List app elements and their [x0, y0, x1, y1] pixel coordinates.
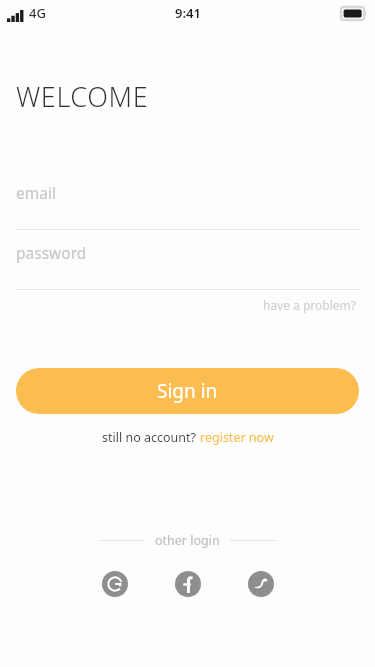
button[interactable]: Sign in with Facebook — [175, 571, 201, 597]
button[interactable]: Sign in with Google — [102, 571, 128, 597]
staticText: 4G — [29, 4, 46, 22]
staticText: have a problem? — [263, 297, 357, 313]
staticText: register now — [200, 429, 274, 446]
button[interactable]: email — [16, 182, 360, 230]
button[interactable]: register now — [200, 429, 274, 446]
button[interactable]: password — [16, 242, 360, 290]
staticText: still no account? — [102, 429, 196, 446]
button[interactable]: Sign in with Twitter — [248, 571, 274, 597]
staticText: email — [16, 182, 56, 203]
button[interactable]: Sign in — [16, 368, 359, 414]
staticText: 9:41 — [175, 4, 201, 22]
staticText: password — [16, 242, 87, 263]
staticText: other login — [155, 532, 220, 549]
button[interactable]: have a problem? — [261, 295, 359, 315]
staticText: Sign in — [157, 378, 218, 404]
staticText: WELCOME — [16, 78, 149, 115]
